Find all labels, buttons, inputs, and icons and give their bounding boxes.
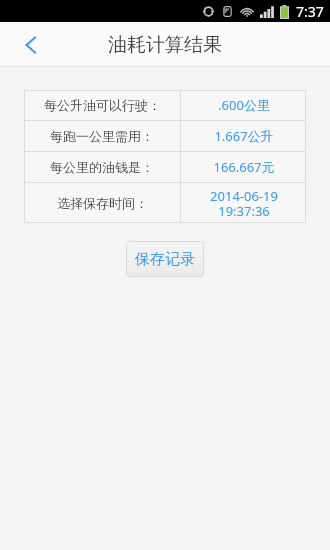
- staticText: 每公里的油钱是：: [50, 159, 154, 175]
- staticText: 1.667公升: [214, 127, 274, 145]
- staticText: 166.667元: [213, 158, 275, 176]
- staticText: 7:37: [296, 2, 324, 21]
- staticText: .600公里: [218, 96, 270, 114]
- staticText: 选择保存时间：: [57, 195, 148, 211]
- staticText: 2014-06-19 19:37:36: [210, 187, 278, 220]
- button[interactable]: Back: [10, 24, 52, 66]
- staticText: 每公升油可以行驶：: [44, 97, 161, 113]
- staticText: 油耗计算结果: [108, 33, 222, 57]
- button[interactable]: 保存记录: [126, 241, 204, 277]
- staticText: 保存记录: [135, 250, 195, 269]
- staticText: 每跑一公里需用：: [50, 128, 154, 144]
